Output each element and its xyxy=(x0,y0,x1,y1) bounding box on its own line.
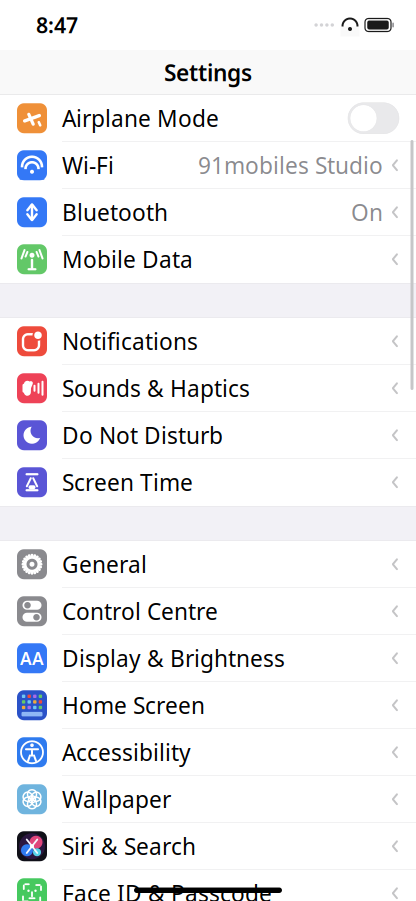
staticText: Home Screen xyxy=(62,690,205,720)
staticText: Accessibility xyxy=(62,737,191,767)
staticText: AA xyxy=(20,647,44,670)
button[interactable]: Sounds & Haptics xyxy=(0,365,416,412)
staticText: On xyxy=(351,197,383,227)
button[interactable]: Home Screen xyxy=(0,682,416,729)
staticText: Do Not Disturb xyxy=(62,420,223,450)
button[interactable]: Notifications xyxy=(0,318,416,365)
staticText: Airplane Mode xyxy=(62,103,219,133)
button[interactable]: AA xyxy=(0,635,416,682)
button[interactable]: Control Centre xyxy=(0,588,416,635)
staticText: Mobile Data xyxy=(62,244,193,274)
button[interactable]: Wi-Fi xyxy=(0,142,416,189)
button[interactable]: Do Not Disturb xyxy=(0,412,416,459)
staticText: Settings xyxy=(164,57,252,87)
staticText: General xyxy=(62,549,147,579)
button[interactable]: Face ID & Passcode xyxy=(0,870,416,901)
staticText: Control Centre xyxy=(62,596,218,626)
staticText: Bluetooth xyxy=(62,197,168,227)
staticText: Notifications xyxy=(62,326,198,356)
button[interactable]: General xyxy=(0,541,416,588)
staticText: 8:47 xyxy=(36,11,78,39)
button[interactable]: Siri & Search xyxy=(0,823,416,870)
staticText: Screen Time xyxy=(62,467,193,497)
staticText: Face ID & Passcode xyxy=(62,878,272,901)
button[interactable]: Airplane Mode xyxy=(0,95,416,142)
button[interactable]: Mobile Data xyxy=(0,236,416,283)
button[interactable]: Accessibility xyxy=(0,729,416,776)
staticText: Wi-Fi xyxy=(62,150,114,180)
staticText: Siri & Search xyxy=(62,831,196,861)
staticText: Sounds & Haptics xyxy=(62,373,250,403)
staticText: Display & Brightness xyxy=(62,643,285,673)
staticText: 91mobiles Studio xyxy=(198,150,383,180)
button[interactable]: Bluetooth xyxy=(0,189,416,236)
button[interactable]: Wallpaper xyxy=(0,776,416,823)
button[interactable]: Screen Time xyxy=(0,459,416,506)
staticText: Wallpaper xyxy=(62,784,171,814)
